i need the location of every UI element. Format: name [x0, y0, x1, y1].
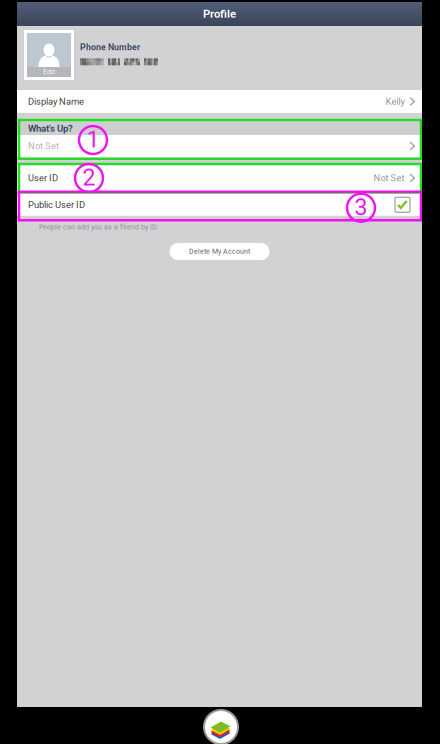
staticText: What's Up? [28, 123, 73, 134]
staticText: Not Set [28, 140, 59, 151]
staticText: Phone Number [80, 42, 140, 52]
button[interactable]: User ID [17, 165, 422, 191]
button[interactable]: Public User ID [17, 194, 422, 216]
staticText: Public User ID [28, 199, 85, 210]
button[interactable]: Edit profile photo [24, 30, 74, 80]
staticText: Display Name [28, 96, 84, 107]
button[interactable]: Display Name [17, 90, 422, 113]
staticText: User ID [28, 172, 58, 183]
button[interactable]: Not Set [17, 135, 422, 157]
staticText: 3 [354, 194, 367, 221]
staticText: Not Set [373, 172, 404, 183]
staticText: Profile [203, 7, 236, 21]
staticText: Kelly [385, 96, 404, 107]
staticText: Delete My Account [189, 247, 250, 255]
staticText: People can add you as a friend by ID. [39, 223, 158, 231]
staticText: Edit [43, 68, 55, 76]
staticText: 2 [82, 164, 95, 191]
button[interactable]: Home [202, 708, 240, 744]
staticText: 1 [86, 126, 99, 153]
button[interactable]: Delete My Account [169, 243, 269, 260]
